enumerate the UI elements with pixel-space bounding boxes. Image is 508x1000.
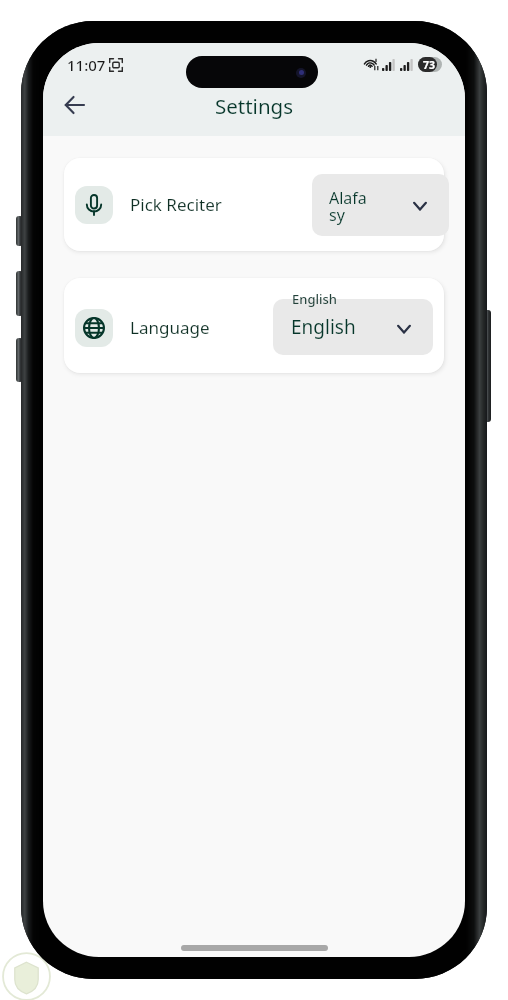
staticText: Alafasy [329,187,369,226]
button[interactable]: Back [51,82,97,128]
staticText: English [291,314,391,340]
button[interactable]: Language [64,278,444,373]
button[interactable]: Alafasy [312,174,449,236]
button[interactable]: English [273,299,433,355]
staticText: Language [130,316,210,339]
staticText: Settings [215,92,294,120]
staticText: 11:07 [67,55,106,75]
staticText: Pick Reciter [130,193,222,216]
staticText: English [292,290,337,308]
button[interactable]: Pick Reciter [64,158,444,251]
staticText: 73 [423,58,436,72]
